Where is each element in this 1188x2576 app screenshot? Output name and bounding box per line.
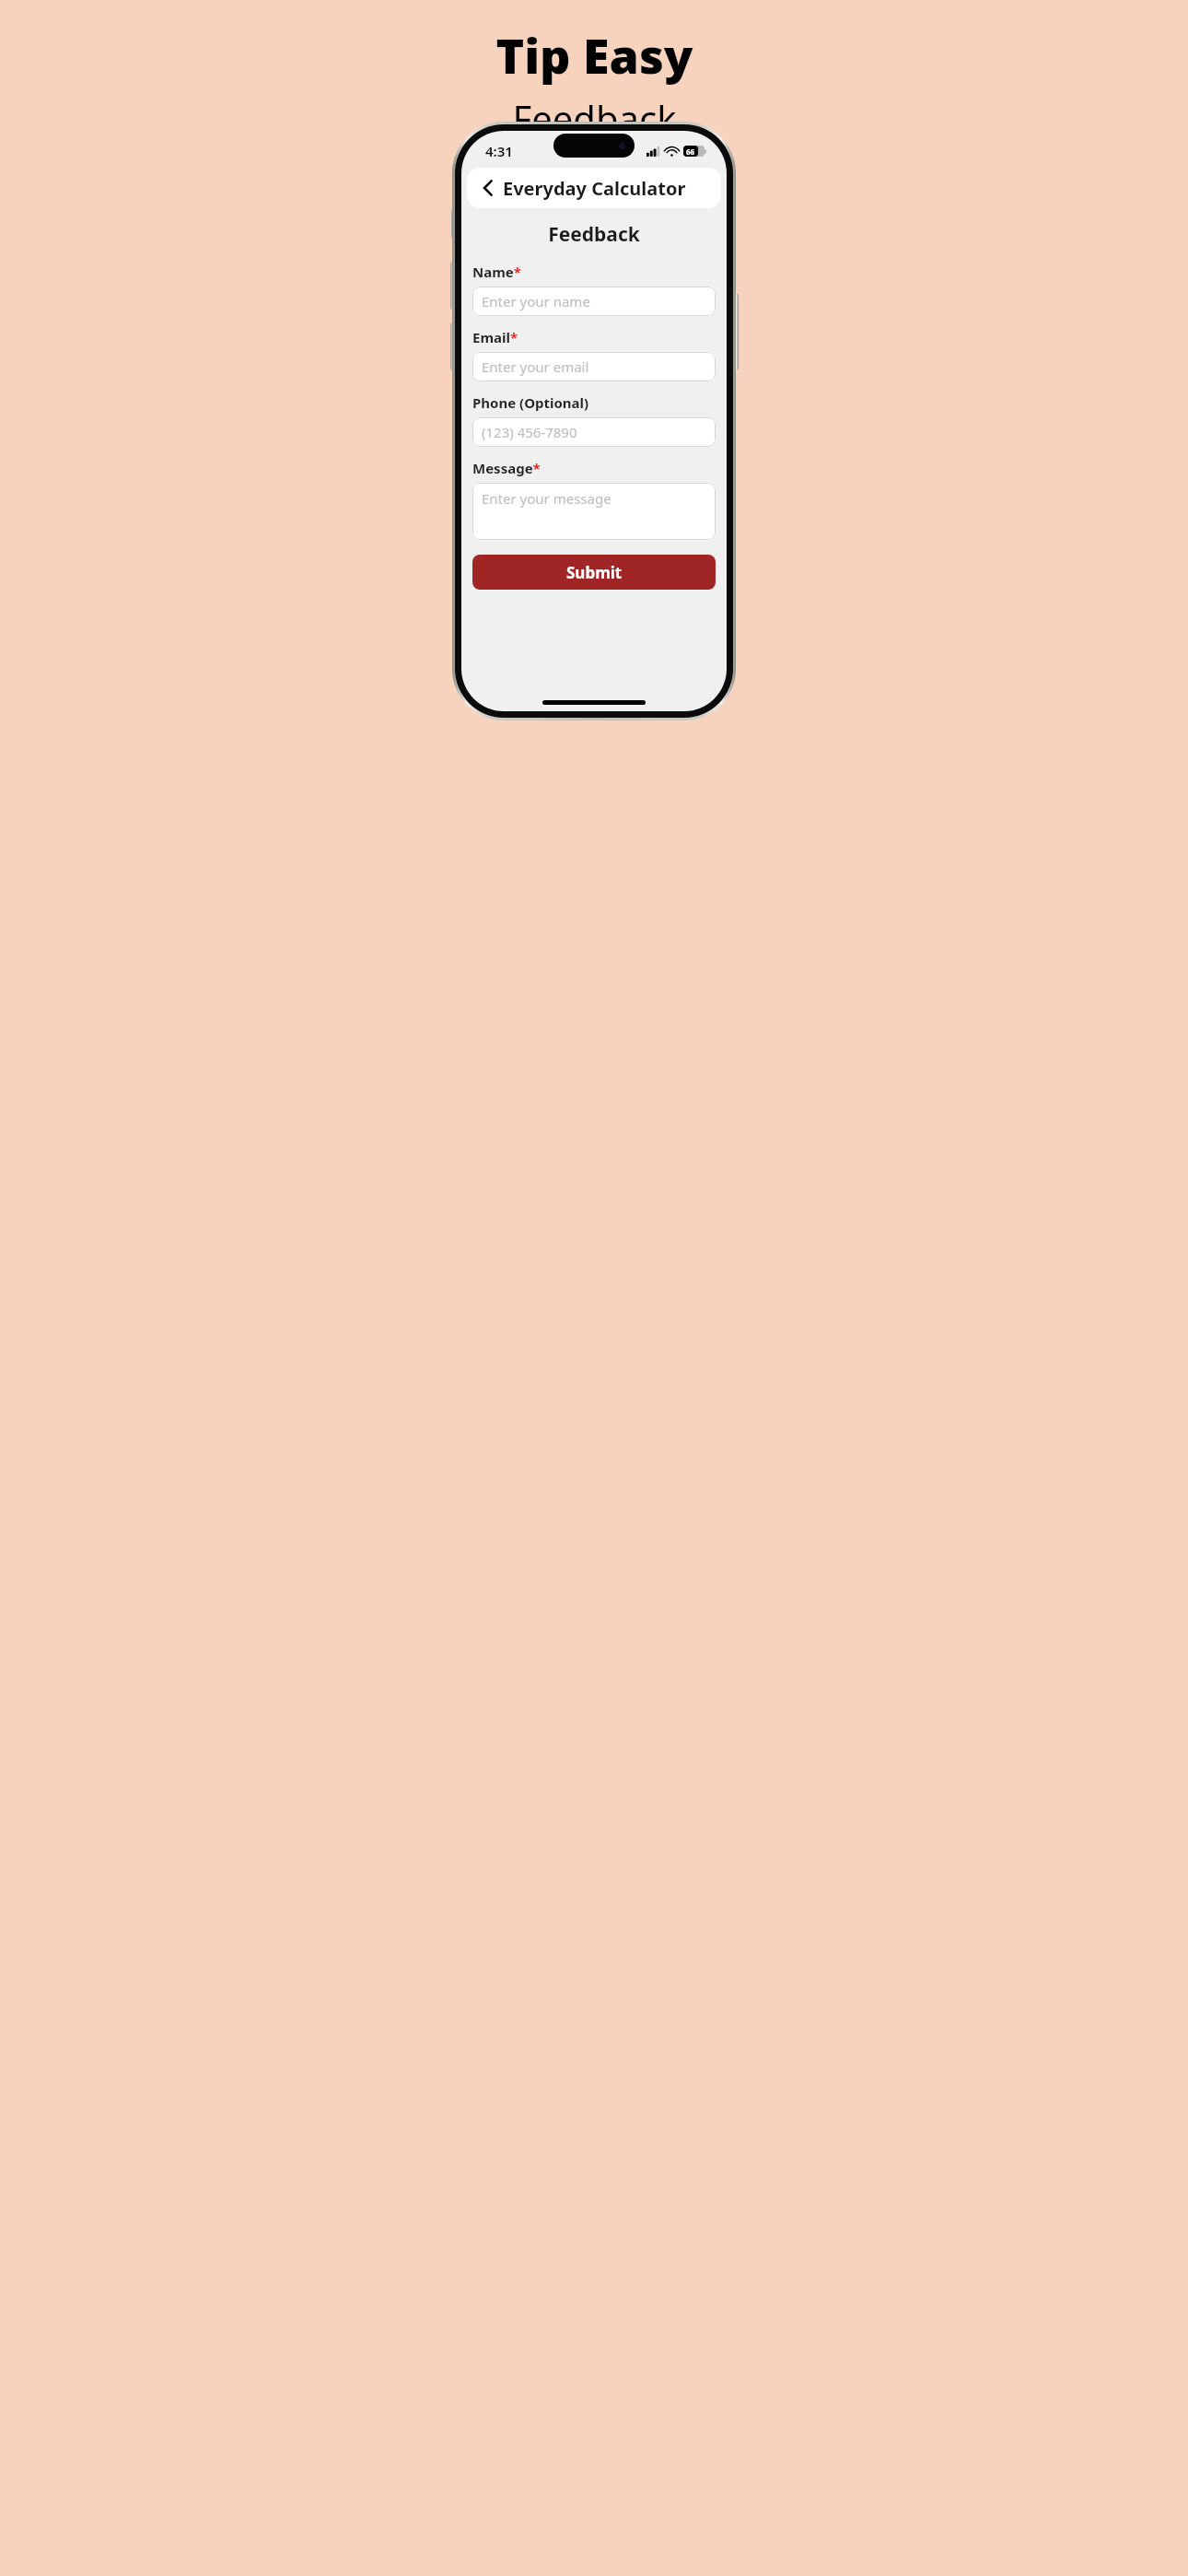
staticText: Feedback Screen bbox=[512, 93, 677, 182]
staticText: Enter your name bbox=[482, 292, 590, 310]
staticText: Submit bbox=[566, 562, 623, 583]
staticText: 4:31 bbox=[485, 142, 513, 160]
staticText: Enter your email bbox=[482, 357, 589, 376]
button[interactable]: Back bbox=[471, 170, 506, 205]
button[interactable]: Back bbox=[467, 168, 721, 208]
button[interactable]: Enter your message bbox=[472, 483, 716, 540]
staticText: Feedback bbox=[461, 221, 727, 248]
button[interactable]: Submit bbox=[472, 555, 716, 590]
staticText: Message* bbox=[472, 459, 541, 477]
button[interactable]: (123) 456-7890 bbox=[472, 417, 716, 447]
button[interactable]: Enter your email bbox=[472, 352, 716, 381]
staticText: 66 bbox=[686, 146, 695, 157]
staticText: Everyday Calculator bbox=[503, 176, 686, 201]
button[interactable]: Enter your name bbox=[472, 287, 716, 316]
staticText: Phone (Optional) bbox=[472, 393, 589, 412]
staticText: Tip Easy bbox=[495, 22, 693, 88]
staticText: (123) 456-7890 bbox=[482, 423, 577, 441]
staticText: Name* bbox=[472, 263, 521, 281]
staticText: Enter your message bbox=[482, 489, 611, 508]
staticText: Email* bbox=[472, 328, 518, 346]
